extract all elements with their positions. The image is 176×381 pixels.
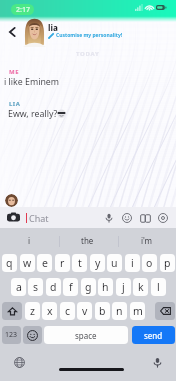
- staticText: b: [99, 304, 106, 318]
- staticText: 2:17: [16, 5, 30, 15]
- button[interactable]: k: [133, 278, 148, 296]
- button[interactable]: h: [98, 278, 113, 296]
- staticText: h: [102, 280, 109, 294]
- button[interactable]: n: [112, 302, 127, 320]
- staticText: TODAY: [76, 50, 100, 58]
- staticText: w: [23, 256, 32, 270]
- button[interactable]: q: [2, 254, 17, 272]
- button[interactable]: Customise my personality: [48, 32, 123, 39]
- button[interactable]: v: [77, 302, 92, 320]
- staticText: 123: [5, 330, 18, 340]
- button[interactable]: Voice message: [100, 209, 118, 227]
- staticText: i'm: [141, 235, 153, 246]
- button[interactable]: Back: [3, 23, 21, 41]
- staticText: u: [111, 256, 118, 270]
- staticText: Chat: [29, 212, 49, 224]
- button[interactable]: Location: [154, 209, 172, 227]
- staticText: a: [16, 280, 22, 294]
- staticText: v: [82, 304, 88, 318]
- button[interactable]: i'm: [117, 228, 176, 252]
- button[interactable]: Shift: [2, 302, 22, 320]
- button[interactable]: the: [58, 228, 117, 252]
- button[interactable]: Dictation: [151, 356, 164, 369]
- staticText: e: [42, 256, 48, 270]
- button[interactable]: y: [90, 254, 105, 272]
- button[interactable]: s: [28, 278, 43, 296]
- staticText: i like Eminem: [4, 76, 60, 88]
- button[interactable]: x: [42, 302, 57, 320]
- staticText: y: [95, 256, 101, 270]
- button[interactable]: g: [81, 278, 96, 296]
- button[interactable]: j: [116, 278, 131, 296]
- staticText: g: [85, 280, 92, 294]
- button[interactable]: d: [46, 278, 61, 296]
- staticText: the: [81, 235, 94, 246]
- staticText: t: [78, 256, 82, 270]
- staticText: o: [146, 256, 153, 270]
- button[interactable]: m: [130, 302, 145, 320]
- staticText: space: [75, 330, 97, 341]
- button[interactable]: c: [60, 302, 75, 320]
- staticText: l: [157, 280, 160, 294]
- button[interactable]: z: [25, 302, 40, 320]
- button[interactable]: i: [125, 254, 140, 272]
- staticText: q: [6, 256, 13, 270]
- button[interactable]: space: [44, 326, 128, 344]
- button[interactable]: GIF: [136, 209, 154, 227]
- staticText: i: [28, 235, 31, 246]
- button[interactable]: r: [55, 254, 70, 272]
- button[interactable]: f: [63, 278, 78, 296]
- button[interactable]: Camera: [6, 207, 21, 228]
- button[interactable]: t: [72, 254, 87, 272]
- staticText: i: [131, 256, 134, 270]
- button[interactable]: b: [95, 302, 110, 320]
- button[interactable]: Backspace: [155, 302, 175, 320]
- staticText: d: [50, 280, 57, 294]
- staticText: lia: [48, 22, 58, 33]
- staticText: Eww, really?: [8, 108, 58, 120]
- button[interactable]: Emoji keyboard: [23, 326, 42, 344]
- button[interactable]: u: [107, 254, 122, 272]
- staticText: LIA: [9, 100, 21, 108]
- button[interactable]: i: [0, 228, 58, 252]
- button[interactable]: w: [20, 254, 35, 272]
- staticText: ME: [9, 68, 20, 76]
- staticText: x: [47, 304, 53, 318]
- button[interactable]: 123: [2, 326, 21, 344]
- staticText: k: [138, 280, 144, 294]
- staticText: p: [164, 256, 171, 270]
- button[interactable]: e: [37, 254, 52, 272]
- staticText: z: [30, 304, 35, 318]
- staticText: s: [33, 280, 39, 294]
- staticText: f: [69, 280, 73, 294]
- button[interactable]: send: [132, 326, 175, 344]
- button[interactable]: a: [11, 278, 26, 296]
- staticText: j: [122, 280, 125, 294]
- staticText: m: [133, 304, 143, 318]
- staticText: send: [144, 330, 163, 341]
- staticText: Customise my personality!: [56, 32, 123, 39]
- staticText: r: [60, 256, 65, 270]
- button[interactable]: l: [151, 278, 166, 296]
- button[interactable]: Change keyboard: [13, 356, 26, 369]
- staticText: n: [116, 304, 123, 318]
- button[interactable]: o: [142, 254, 157, 272]
- staticText: c: [65, 304, 71, 318]
- button[interactable]: p: [160, 254, 175, 272]
- button[interactable]: Emoji: [118, 209, 136, 227]
